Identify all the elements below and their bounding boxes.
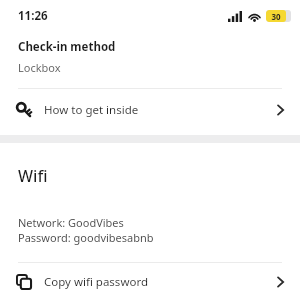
staticText: How to get inside [44, 102, 139, 118]
other: Key [16, 102, 32, 118]
staticText: Network: GoodVibes [18, 215, 124, 230]
staticText: 11:26 [18, 8, 48, 24]
button[interactable]: Key [0, 89, 300, 131]
staticText: 30 [266, 11, 286, 22]
staticText: Wifi [18, 165, 48, 187]
staticText: Copy wifi password [44, 274, 148, 290]
staticText: Check-in method [18, 39, 116, 55]
other: Copy [16, 274, 32, 290]
button[interactable]: Copy [0, 263, 300, 300]
staticText: Lockbox [18, 60, 61, 75]
staticText: Password: goodvibesabnb [18, 230, 154, 245]
